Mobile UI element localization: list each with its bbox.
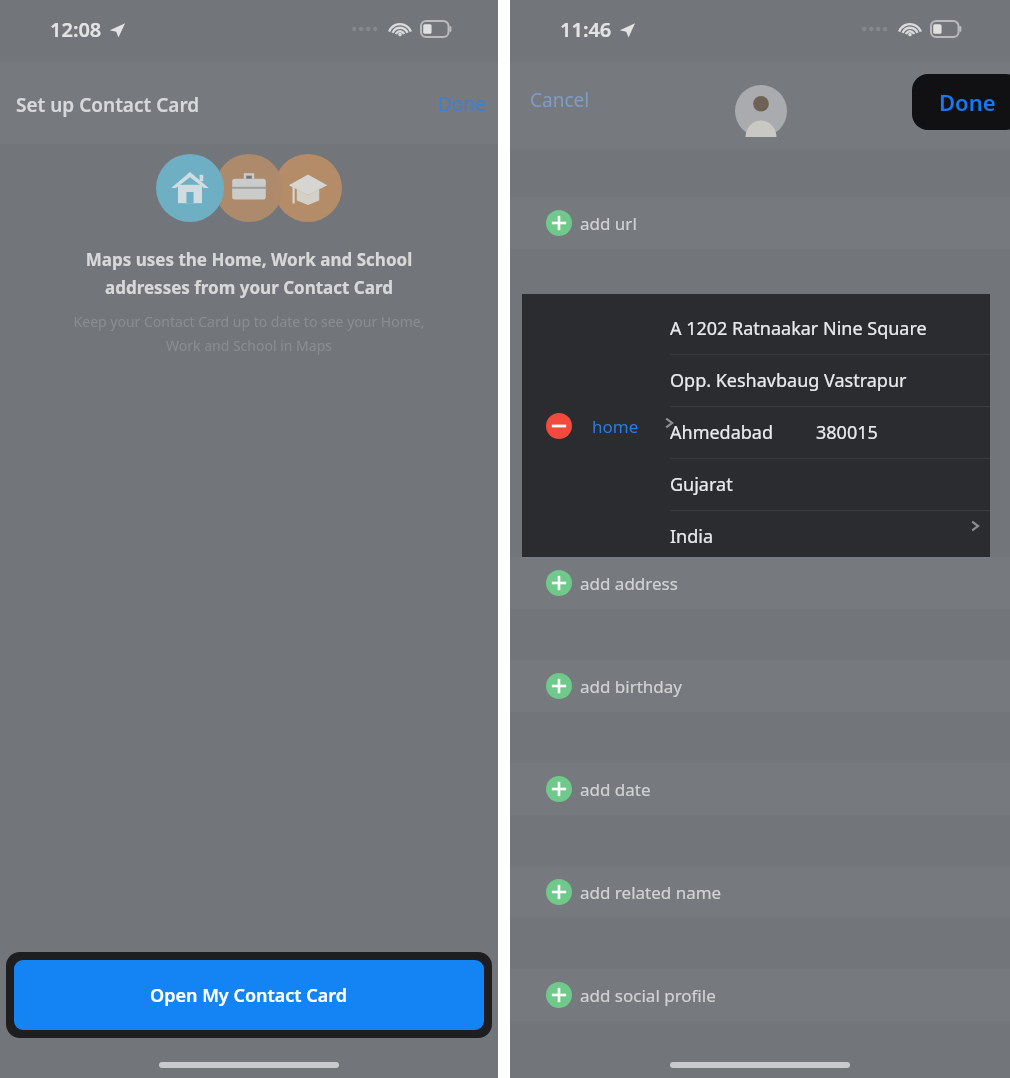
staticText: add url [580, 212, 637, 235]
staticText: Keep your Contact Card up to date to see… [0, 312, 498, 355]
button[interactable]: add address [510, 557, 1010, 609]
button[interactable]: Gujarat [670, 458, 990, 510]
staticText: add social profile [580, 984, 716, 1007]
staticText: Opp. Keshavbaug Vastrapur [670, 368, 907, 393]
button[interactable]: add birthday [510, 660, 1010, 712]
button[interactable]: home [592, 406, 664, 446]
staticText: Gujarat [670, 472, 733, 497]
button[interactable]: add url [510, 197, 1010, 249]
staticText: add birthday [580, 675, 683, 698]
button[interactable]: Open My Contact Card [14, 960, 484, 1030]
staticText: 12:08 [50, 16, 102, 43]
button[interactable]: add related name [510, 866, 1010, 918]
staticText: Done [438, 91, 486, 117]
button[interactable]: add date [510, 763, 1010, 815]
button[interactable]: Opp. Keshavbaug Vastrapur [670, 354, 990, 406]
button[interactable]: Done [410, 86, 486, 122]
staticText: add related name [580, 881, 722, 904]
staticText: Maps uses the Home, Work and School addr… [0, 248, 498, 299]
staticText: A 1202 Ratnaakar Nine Square [670, 316, 927, 341]
button[interactable]: add social profile [510, 969, 1010, 1021]
staticText: Open My Contact Card [150, 983, 348, 1008]
button[interactable]: Cancel [530, 82, 630, 118]
staticText: Cancel [530, 87, 590, 113]
staticText: Ahmedabad [670, 420, 774, 445]
other: Edit label [662, 416, 676, 430]
button[interactable]: India [670, 510, 990, 562]
button[interactable]: Ahmedabad [670, 406, 990, 458]
staticText: add date [580, 778, 651, 801]
staticText: add address [580, 572, 678, 595]
staticText: Set up Contact Card [16, 92, 200, 118]
staticText: India [670, 524, 714, 549]
staticText: Done [939, 87, 996, 117]
button[interactable]: A 1202 Ratnaakar Nine Square [670, 302, 990, 354]
button[interactable]: Profile photo [735, 85, 787, 137]
button[interactable]: Done [912, 74, 1010, 130]
staticText: 11:46 [560, 16, 612, 43]
staticText: home [592, 415, 639, 438]
staticText: 380015 [816, 420, 878, 445]
